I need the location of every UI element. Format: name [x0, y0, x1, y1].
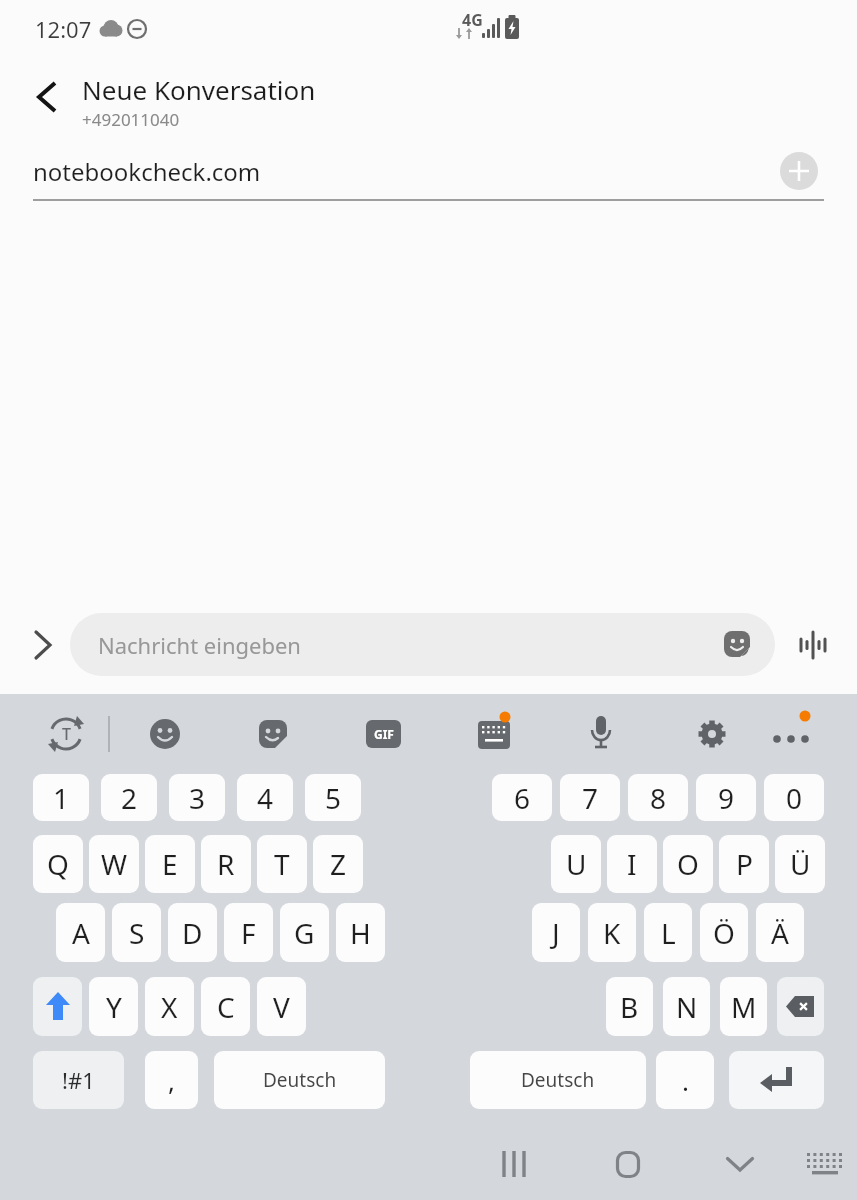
button[interactable]: 4	[237, 774, 293, 821]
button[interactable]	[780, 152, 818, 190]
button[interactable]	[806, 1152, 844, 1177]
staticText: I	[627, 845, 637, 883]
button[interactable]: G	[280, 903, 329, 962]
staticText: 3	[189, 779, 206, 817]
button[interactable]: E	[145, 835, 195, 893]
button[interactable]	[777, 977, 824, 1036]
button[interactable]	[34, 80, 60, 114]
staticText: Ä	[771, 914, 789, 952]
button[interactable]: 8	[628, 774, 688, 821]
button[interactable]	[729, 1051, 824, 1109]
button[interactable]: ,	[145, 1051, 198, 1109]
button[interactable]	[477, 720, 513, 750]
button[interactable]: X	[145, 977, 194, 1036]
button[interactable]: D	[168, 903, 217, 962]
staticText: 6	[514, 779, 531, 817]
button[interactable]: M	[720, 977, 767, 1036]
staticText: 8	[650, 779, 667, 817]
staticText: K	[603, 914, 621, 952]
button[interactable]: Q	[33, 835, 83, 893]
staticText: Y	[106, 988, 122, 1026]
staticText: P	[736, 845, 753, 883]
button[interactable]	[763, 730, 819, 748]
button[interactable]	[697, 719, 727, 749]
button[interactable]: 0	[764, 774, 824, 821]
staticText: Ü	[790, 845, 811, 883]
staticText: H	[350, 914, 371, 952]
button[interactable]: 9	[696, 774, 756, 821]
button[interactable]: B	[606, 977, 653, 1036]
button[interactable]: O	[663, 835, 713, 893]
button[interactable]	[726, 1157, 754, 1172]
button[interactable]: C	[201, 977, 250, 1036]
button[interactable]: H	[336, 903, 385, 962]
staticText: 0	[786, 779, 803, 817]
button[interactable]	[798, 630, 828, 660]
button[interactable]	[259, 720, 287, 748]
button[interactable]: Ö	[700, 903, 748, 962]
staticText: M	[731, 988, 757, 1026]
button[interactable]: Z	[313, 835, 363, 893]
button[interactable]	[33, 630, 55, 660]
button[interactable]: 2	[101, 774, 157, 821]
staticText: G	[294, 914, 315, 952]
staticText: C	[217, 988, 235, 1026]
button[interactable]: V	[257, 977, 306, 1036]
staticText: L	[661, 914, 676, 952]
button[interactable]: K	[588, 903, 636, 962]
button[interactable]: F	[224, 903, 273, 962]
button[interactable]	[502, 1151, 528, 1177]
staticText: Q	[47, 845, 69, 883]
button[interactable]	[723, 630, 751, 658]
staticText: X	[161, 988, 178, 1026]
staticText: 12:07	[35, 14, 92, 44]
staticText: Z	[330, 845, 347, 883]
staticText: +492011040	[82, 108, 180, 130]
button[interactable]: Deutsch	[470, 1051, 646, 1109]
button[interactable]: Ü	[775, 835, 825, 893]
staticText: O	[677, 845, 699, 883]
button[interactable]: GIF	[366, 720, 401, 748]
button[interactable]: L	[644, 903, 692, 962]
button[interactable]: J	[532, 903, 580, 962]
button[interactable]	[33, 977, 82, 1036]
staticText: T	[62, 723, 71, 745]
staticText: Neue Konversation	[82, 72, 316, 106]
staticText: S	[129, 914, 145, 952]
button[interactable]: 7	[560, 774, 620, 821]
button[interactable]: R	[201, 835, 251, 893]
button[interactable]	[150, 719, 180, 749]
staticText: D	[182, 914, 203, 952]
button[interactable]: A	[56, 903, 105, 962]
button[interactable]	[46, 714, 86, 754]
button[interactable]: Nachricht eingeben	[70, 613, 775, 676]
button[interactable]	[616, 1151, 640, 1178]
button[interactable]: 5	[305, 774, 361, 821]
button[interactable]: .	[656, 1051, 714, 1109]
button[interactable]: Ä	[756, 903, 804, 962]
button[interactable]: S	[112, 903, 161, 962]
staticText: 7	[582, 779, 599, 817]
button[interactable]: T	[257, 835, 307, 893]
staticText: 2	[121, 779, 138, 817]
staticText: T	[274, 845, 290, 883]
button[interactable]: I	[607, 835, 657, 893]
staticText: Ö	[713, 914, 735, 952]
button[interactable]: N	[663, 977, 710, 1036]
button[interactable]: U	[551, 835, 601, 893]
button[interactable]: !#1	[33, 1051, 124, 1109]
button[interactable]: 1	[33, 774, 89, 821]
button[interactable]: W	[89, 835, 139, 893]
staticText: W	[101, 845, 128, 883]
staticText: GIF	[374, 726, 394, 742]
button[interactable]: 3	[169, 774, 225, 821]
button[interactable]	[588, 716, 614, 754]
button[interactable]: P	[719, 835, 769, 893]
staticText: Deutsch	[263, 1067, 337, 1093]
button[interactable]: 6	[492, 774, 552, 821]
button[interactable]: Y	[89, 977, 138, 1036]
staticText: 4G	[462, 9, 483, 29]
button[interactable]: Deutsch	[214, 1051, 385, 1109]
staticText: N	[676, 988, 698, 1026]
staticText: E	[162, 845, 178, 883]
